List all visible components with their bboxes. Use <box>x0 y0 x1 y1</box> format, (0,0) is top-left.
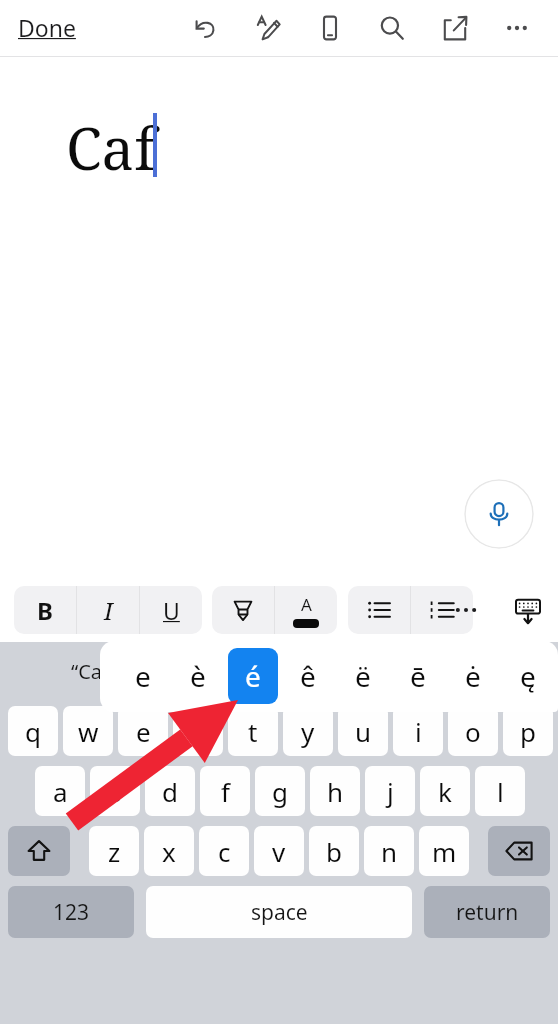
button[interactable]: ë <box>338 648 388 704</box>
button[interactable]: x <box>144 826 194 876</box>
staticText: é <box>245 657 261 695</box>
staticText: f <box>221 774 230 809</box>
button[interactable]: Hide keyboard <box>504 586 552 634</box>
button[interactable]: Bulleted list <box>348 586 410 634</box>
staticText: Done <box>18 12 76 43</box>
staticText: q <box>25 714 41 749</box>
staticText: h <box>327 774 344 809</box>
staticText: ę <box>520 657 536 695</box>
button[interactable]: y <box>283 706 333 756</box>
staticText: e <box>136 714 151 749</box>
button[interactable]: ê <box>283 648 333 704</box>
staticText: p <box>520 714 536 749</box>
button[interactable]: r <box>173 706 223 756</box>
staticText: Cafe <box>444 658 487 685</box>
staticText: ē <box>410 657 426 695</box>
button[interactable]: k <box>420 766 470 816</box>
staticText: i <box>415 714 422 749</box>
staticText: v <box>272 834 286 869</box>
button[interactable]: ė <box>448 648 498 704</box>
button[interactable]: Done <box>12 6 82 49</box>
button[interactable]: w <box>63 706 113 756</box>
button[interactable]: Text color <box>275 586 337 634</box>
button[interactable]: Numbered list <box>411 586 473 634</box>
button[interactable]: Undo <box>183 6 227 50</box>
staticText: d <box>162 774 178 809</box>
button[interactable]: è <box>173 648 223 704</box>
staticText: t <box>248 714 258 749</box>
button[interactable]: Share <box>433 6 477 50</box>
button[interactable]: p <box>503 706 553 756</box>
button[interactable]: “Caf” <box>53 652 136 691</box>
button[interactable]: Dictate <box>464 479 534 549</box>
staticText: x <box>162 834 176 869</box>
staticText: e <box>135 657 151 695</box>
staticText: A <box>301 593 312 616</box>
button[interactable]: i <box>393 706 443 756</box>
button[interactable]: l <box>475 766 525 816</box>
button[interactable]: s <box>90 766 140 816</box>
button[interactable]: h <box>310 766 360 816</box>
staticText: U <box>163 595 180 626</box>
button[interactable]: a <box>35 766 85 816</box>
button[interactable]: u <box>338 706 388 756</box>
staticText: ë <box>355 657 371 695</box>
staticText: s <box>109 774 122 809</box>
button[interactable]: More options <box>495 6 539 50</box>
button[interactable]: f <box>200 766 250 816</box>
button[interactable]: Cafe <box>426 652 505 691</box>
staticText: n <box>381 834 398 869</box>
button[interactable]: n <box>364 826 414 876</box>
staticText: c <box>218 834 231 869</box>
staticText: l <box>497 774 504 809</box>
staticText: y <box>301 714 315 749</box>
staticText: ė <box>465 657 481 695</box>
staticText: u <box>355 714 372 749</box>
staticText: “Caf” <box>71 658 118 685</box>
staticText: k <box>438 774 452 809</box>
button[interactable]: 123 <box>8 886 134 938</box>
staticText: Caf <box>66 108 156 187</box>
button[interactable]: j <box>365 766 415 816</box>
button[interactable]: Bold <box>14 586 76 634</box>
button[interactable]: space <box>146 886 412 938</box>
staticText: w <box>78 714 99 749</box>
button[interactable]: t <box>228 706 278 756</box>
button[interactable]: e <box>118 706 168 756</box>
button[interactable]: o <box>448 706 498 756</box>
staticText: 123 <box>53 898 90 927</box>
staticText: g <box>272 774 288 809</box>
button[interactable]: Shift <box>8 826 70 876</box>
button[interactable]: Backspace <box>488 826 550 876</box>
button[interactable]: m <box>419 826 469 876</box>
button[interactable]: return <box>424 886 550 938</box>
staticText: j <box>387 774 394 809</box>
staticText: a <box>53 774 68 809</box>
button[interactable]: v <box>254 826 304 876</box>
button[interactable]: b <box>309 826 359 876</box>
button[interactable]: d <box>145 766 195 816</box>
button[interactable]: Markup <box>246 6 290 50</box>
button[interactable]: é <box>228 648 278 704</box>
staticText: Café <box>259 658 302 685</box>
button[interactable]: c <box>199 826 249 876</box>
button[interactable]: Search <box>370 6 414 50</box>
button[interactable]: Device <box>308 6 352 50</box>
button[interactable]: ē <box>393 648 443 704</box>
staticText: m <box>432 834 457 869</box>
button[interactable]: q <box>8 706 58 756</box>
staticText: space <box>251 898 308 927</box>
button[interactable]: Café <box>241 652 320 691</box>
staticText: return <box>456 898 519 927</box>
button[interactable]: z <box>89 826 139 876</box>
staticText: b <box>326 834 342 869</box>
button[interactable]: g <box>255 766 305 816</box>
button[interactable]: Highlight <box>212 586 274 634</box>
button[interactable]: More formatting <box>442 586 490 634</box>
button[interactable]: Underline <box>140 586 202 634</box>
button[interactable]: e <box>118 648 168 704</box>
staticText: r <box>193 714 204 749</box>
button[interactable]: ę <box>503 648 553 704</box>
button[interactable]: Italic <box>77 586 139 634</box>
staticText: I <box>104 594 113 627</box>
